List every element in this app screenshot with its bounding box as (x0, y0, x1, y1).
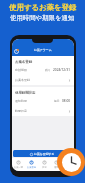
staticText: 使用するお薬を登録 (9, 3, 77, 12)
staticText: 使用時間設定 (15, 91, 36, 95)
staticText: お薬を登録する (34, 152, 55, 156)
button[interactable]: 履歴 (50, 158, 62, 171)
button[interactable]: お薬名登録 (12, 75, 74, 85)
staticText: 有効期限 (15, 68, 27, 72)
staticText: お薬登録 (27, 166, 36, 169)
button[interactable]: その他 (62, 158, 74, 171)
staticText: 使用時間や期限を通知 (10, 14, 75, 22)
staticText: 通知時間 (15, 99, 27, 103)
staticText: 2024/12/31 (53, 68, 71, 72)
staticText: 残り (45, 68, 51, 72)
staticText: お薬アラーム (34, 48, 52, 52)
staticText: お薬名登録 (15, 60, 33, 64)
button[interactable]: お薬を登録する (13, 150, 71, 157)
button[interactable]: お薬一覧 (12, 158, 25, 171)
button[interactable]: Menu (14, 49, 19, 54)
staticText: 履歴 (54, 166, 59, 169)
other: Alarm (57, 148, 85, 176)
staticText: 毎日 (54, 99, 60, 103)
staticText: 時間設定 (15, 109, 27, 113)
button[interactable]: 設定 (38, 158, 50, 171)
staticText: お薬一覧 (14, 166, 23, 169)
staticText: 設定 (42, 166, 47, 169)
button[interactable]: お薬登録 (25, 158, 38, 171)
button[interactable]: 時間設定 (12, 106, 74, 116)
staticText: お薬名登録 (15, 78, 31, 82)
staticText: 08:00 (62, 99, 71, 103)
